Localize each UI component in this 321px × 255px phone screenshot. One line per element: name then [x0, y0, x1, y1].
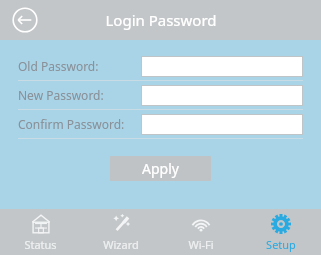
staticText: Wizard — [103, 237, 139, 252]
staticText: Login Password — [105, 10, 217, 30]
staticText: Setup — [266, 237, 296, 252]
staticText: Confirm Password: — [18, 116, 125, 132]
button[interactable]: Apply — [110, 156, 211, 181]
staticText: Apply — [142, 159, 179, 178]
staticText: Old Password: — [18, 58, 99, 74]
button[interactable]: Setup — [241, 209, 321, 255]
button[interactable]: Status — [0, 209, 81, 255]
button[interactable]: Wizard — [81, 209, 161, 255]
staticText: Status — [24, 237, 57, 252]
button[interactable]: Back — [10, 5, 40, 35]
button[interactable]: Wi-Fi — [161, 209, 241, 255]
staticText: New Password: — [18, 87, 104, 103]
staticText: Wi-Fi — [188, 237, 214, 252]
